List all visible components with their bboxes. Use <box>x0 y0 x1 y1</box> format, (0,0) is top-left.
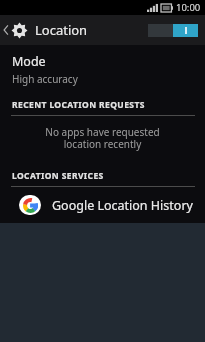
staticText: Google Location History <box>52 197 193 214</box>
staticText: Mode <box>12 53 46 70</box>
other: Back <box>3 25 9 35</box>
staticText: 10:00 <box>176 1 201 14</box>
staticText: LOCATION SERVICES <box>12 170 104 182</box>
button[interactable]: Google Location History <box>0 187 205 223</box>
button[interactable]: Location on/off <box>148 24 198 37</box>
button[interactable]: Back <box>0 16 96 44</box>
staticText: No apps have requested location recently <box>26 125 179 151</box>
button[interactable]: Mode <box>0 45 205 95</box>
staticText: RECENT LOCATION REQUESTS <box>12 99 145 111</box>
staticText: High accuracy <box>12 72 78 86</box>
staticText: Location <box>35 21 88 39</box>
